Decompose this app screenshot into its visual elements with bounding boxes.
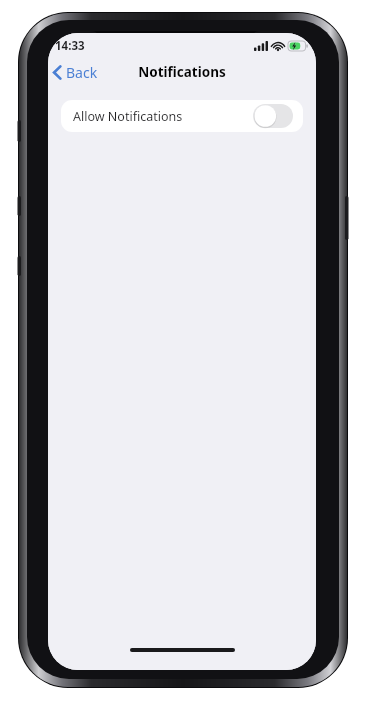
staticText: Allow Notifications — [73, 108, 183, 125]
staticText: 14:33 — [55, 38, 85, 54]
button[interactable]: Allow Notifications toggle, off — [253, 104, 293, 128]
button[interactable]: Back — [48, 59, 106, 86]
staticText: Notifications — [138, 63, 226, 81]
button[interactable]: Allow Notifications — [61, 100, 303, 132]
staticText: Back — [66, 63, 98, 82]
